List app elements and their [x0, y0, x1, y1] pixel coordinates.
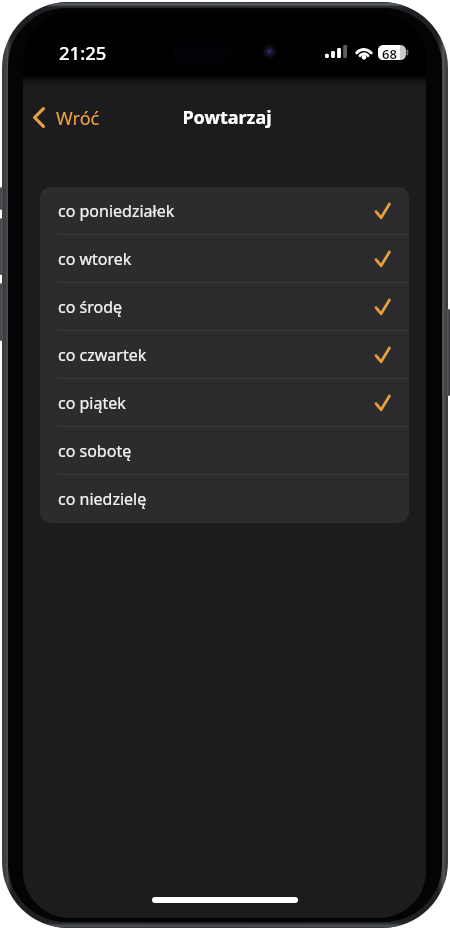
button[interactable]: co niedzielę [40, 475, 409, 523]
button[interactable]: co piątek [40, 379, 409, 427]
button[interactable]: co wtorek [40, 235, 409, 283]
staticText: 21:25 [59, 40, 107, 65]
button[interactable]: co środę [40, 283, 409, 331]
staticText: co czwartek [58, 344, 147, 366]
button[interactable]: Wróć [28, 101, 108, 135]
staticText: co sobotę [58, 440, 132, 462]
staticText: co piątek [58, 392, 126, 414]
button[interactable]: co poniedziałek [40, 187, 409, 235]
staticText: co poniedziałek [58, 200, 175, 222]
staticText: Powtarzaj [182, 105, 272, 130]
staticText: co wtorek [58, 248, 132, 270]
staticText: co środę [58, 296, 123, 318]
button[interactable]: co czwartek [40, 331, 409, 379]
staticText: co niedzielę [58, 488, 147, 510]
button[interactable]: co sobotę [40, 427, 409, 475]
staticText: Wróć [56, 106, 100, 131]
staticText: 68 [382, 45, 397, 60]
